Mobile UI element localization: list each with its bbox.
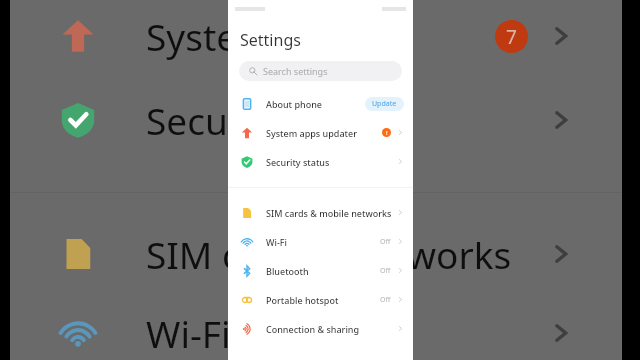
- button[interactable]: Securit: [10, 70, 622, 170]
- staticText: System apps updater: [266, 127, 357, 139]
- button[interactable]: Wi-Fi: [10, 305, 622, 360]
- staticText: Off: [380, 295, 391, 305]
- staticText: Wi-Fi: [266, 236, 287, 248]
- staticText: About phone: [266, 98, 322, 110]
- button[interactable]: Search settings: [239, 61, 402, 81]
- button[interactable]: About phone: [228, 89, 413, 118]
- staticText: Connection & sharing: [266, 323, 360, 335]
- staticText: SIM car: [146, 229, 276, 279]
- staticText: Wi-Fi: [146, 308, 231, 358]
- staticText: Off: [380, 237, 391, 247]
- button[interactable]: Wi-Fi: [228, 227, 413, 256]
- staticText: SIM cards & mobile networks: [266, 207, 392, 219]
- staticText: Bluetooth: [266, 265, 309, 277]
- button[interactable]: System: [10, 2, 622, 70]
- button[interactable]: Bluetooth: [228, 256, 413, 285]
- staticText: Update: [372, 99, 397, 109]
- staticText: System: [146, 11, 272, 61]
- button[interactable]: Connection & sharing: [228, 314, 413, 343]
- button[interactable]: SIM car: [10, 203, 622, 305]
- staticText: Settings: [240, 29, 301, 51]
- other: Update available: [382, 128, 391, 137]
- staticText: Security status: [266, 156, 330, 168]
- staticText: Portable hotspot: [266, 294, 339, 306]
- staticText: Off: [380, 266, 391, 276]
- button[interactable]: Security status: [228, 147, 413, 176]
- button[interactable]: Portable hotspot: [228, 285, 413, 314]
- staticText: Search settings: [263, 65, 328, 77]
- button[interactable]: Update: [365, 97, 404, 111]
- staticText: 7: [506, 24, 517, 50]
- staticText: works: [407, 229, 512, 279]
- button[interactable]: System apps updater: [228, 118, 413, 147]
- staticText: !: [386, 129, 388, 137]
- button[interactable]: SIM cards & mobile networks: [228, 198, 413, 227]
- staticText: Securit: [146, 95, 266, 145]
